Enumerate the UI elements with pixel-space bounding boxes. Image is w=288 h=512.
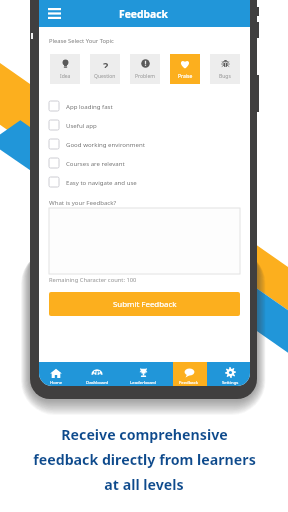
staticText: Home bbox=[50, 379, 63, 385]
button[interactable]: Feedback bbox=[173, 362, 205, 386]
staticText: Praise bbox=[178, 73, 193, 80]
staticText: Feedback bbox=[119, 7, 168, 21]
staticText: Useful app bbox=[66, 121, 97, 129]
staticText: Problem bbox=[135, 73, 155, 80]
button[interactable]: Bugs bbox=[210, 54, 240, 84]
staticText: ? bbox=[103, 59, 109, 68]
staticText: Receive comprehensive bbox=[61, 425, 228, 444]
staticText: feedback directly from learners bbox=[33, 450, 256, 469]
staticText: Remaining Character count: 100 bbox=[49, 276, 137, 284]
button[interactable]: Settings bbox=[214, 362, 246, 386]
staticText: at all levels bbox=[104, 475, 184, 494]
button[interactable]: ? bbox=[90, 54, 120, 84]
button[interactable]: App loading fast bbox=[39, 96, 250, 115]
button[interactable]: Easy to navigate and use bbox=[39, 172, 250, 191]
staticText: Submit Feedback bbox=[113, 299, 177, 310]
staticText: Dashboard bbox=[86, 379, 109, 385]
button[interactable]: Leaderboard bbox=[127, 362, 159, 386]
staticText: What is your Feedback? bbox=[49, 198, 117, 206]
staticText: Bugs bbox=[219, 73, 231, 80]
button[interactable]: Dashboard bbox=[81, 362, 113, 386]
button[interactable]: Good working environment bbox=[39, 134, 250, 153]
button[interactable]: Home bbox=[40, 362, 72, 386]
button[interactable]: Submit Feedback bbox=[49, 292, 240, 316]
button[interactable]: Idea bbox=[50, 54, 80, 84]
staticText: Settings bbox=[222, 379, 239, 385]
staticText: Leaderboard bbox=[130, 379, 156, 385]
staticText: Easy to navigate and use bbox=[66, 178, 137, 186]
staticText: Good working environment bbox=[66, 140, 145, 148]
button[interactable]: Open navigation menu bbox=[44, 3, 65, 24]
button[interactable]: Useful app bbox=[39, 115, 250, 134]
staticText: Courses are relevant bbox=[66, 159, 125, 167]
button[interactable]: Praise bbox=[170, 54, 200, 84]
staticText: App loading fast bbox=[66, 102, 113, 110]
staticText: Please Select Your Topic bbox=[49, 37, 114, 45]
button[interactable]: Problem bbox=[130, 54, 160, 84]
staticText: Feedback bbox=[179, 379, 199, 385]
staticText: Idea bbox=[60, 73, 71, 80]
staticText: Question bbox=[94, 73, 116, 80]
button[interactable]: Courses are relevant bbox=[39, 153, 250, 172]
